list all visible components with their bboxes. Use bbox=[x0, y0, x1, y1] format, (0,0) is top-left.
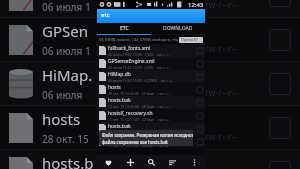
button[interactable]: HiMap.db bbox=[97, 70, 205, 83]
staticText: hosts.bak bbox=[108, 97, 131, 104]
button[interactable]: hostsX_recovery.sh bbox=[97, 109, 205, 122]
staticText: fallback_fonts.xml bbox=[108, 45, 151, 52]
button[interactable]: hosts.bak bbox=[97, 96, 205, 109]
staticText: hosts.b bbox=[42, 153, 94, 169]
staticText: hosts.orig bbox=[108, 136, 132, 143]
staticText: ETC bbox=[120, 25, 129, 32]
staticText: Права R/W bbox=[181, 37, 201, 43]
button[interactable]: More options bbox=[184, 155, 204, 169]
button[interactable]: Select bbox=[269, 161, 291, 169]
staticText: hosts bbox=[42, 109, 81, 129]
staticText: -rw-r--r-- bbox=[202, 130, 238, 142]
staticText: HiMap.db bbox=[108, 71, 131, 78]
staticText: 28 окт. 15 13:43:40 25 байт -rw-r--r-- bbox=[108, 91, 172, 96]
button[interactable]: GPSenseEngine.xml bbox=[97, 57, 205, 70]
button[interactable]: hosts.orig bbox=[97, 135, 205, 148]
staticText: 06 июля 15:07 10:00 6,27MB -rw-r--r-- bbox=[108, 78, 174, 83]
button[interactable]: Sort bbox=[162, 155, 182, 169]
button[interactable]: Select bbox=[269, 117, 291, 139]
staticText: 11 окт. 15 10:11:00 42 байт -rw-r--r-- bbox=[108, 143, 172, 148]
button[interactable]: Favorites bbox=[98, 155, 118, 169]
staticText: GPSen bbox=[42, 21, 88, 41]
staticText: 11 окт. 15 12:29:00 28 байт -rw-r--r-- bbox=[108, 104, 172, 109]
button[interactable]: HiMap. bbox=[0, 62, 300, 106]
staticText: -rw-r--r-- bbox=[202, 42, 238, 54]
staticText: GPSenseEngine.xml bbox=[108, 58, 155, 65]
staticText: файла сохранена как hosts.bak bbox=[102, 139, 168, 145]
staticText: 58,63MB занято, 144,47MB свободно, r/w bbox=[99, 37, 179, 42]
button[interactable]: hosts.b bbox=[0, 150, 300, 169]
staticText: 28 окт. 15 bbox=[42, 132, 89, 146]
button[interactable]: fallback_fonts.xml bbox=[97, 44, 205, 57]
staticText: 11 окт. 15 10:11:00 42 байт -rw-r--r-- bbox=[108, 117, 172, 122]
staticText: hosts bbox=[108, 84, 121, 91]
staticText: 06 июля 1 bbox=[42, 44, 91, 58]
button[interactable]: hosts bbox=[0, 106, 300, 150]
staticText: Файл сохранен. Резервная копия исходного bbox=[102, 132, 193, 138]
staticText: -rw-r--r-- bbox=[202, 86, 238, 98]
staticText: hostsX_recovery.sh bbox=[108, 110, 153, 117]
staticText: hosts.bak bbox=[108, 123, 131, 130]
button[interactable]: hosts.bak bbox=[97, 122, 205, 135]
button[interactable]: Select bbox=[269, 73, 291, 95]
staticText: 06 июля bbox=[42, 88, 83, 102]
staticText: DOWNLOAD bbox=[163, 25, 193, 32]
staticText: 06 июля 15:07 10:00 6,30K -rw-r--r-- bbox=[108, 65, 171, 70]
button[interactable]: GPSen bbox=[0, 18, 300, 62]
button[interactable]: Select bbox=[269, 29, 291, 51]
staticText: 11 окт. 15 10:11:00 42 байт -rw-r--r-- bbox=[108, 130, 172, 135]
button[interactable]: Права R/W bbox=[179, 37, 203, 43]
staticText: -rw-r--r-- bbox=[202, 0, 238, 10]
staticText: HiMap. bbox=[42, 65, 93, 85]
button[interactable]: fallback_f bbox=[0, 0, 300, 18]
button[interactable]: ETC bbox=[97, 23, 151, 34]
staticText: 06 июля 1 bbox=[42, 0, 91, 14]
button[interactable]: Add bbox=[120, 155, 140, 169]
button[interactable]: Search bbox=[141, 155, 161, 169]
staticText: 06 июля 15:07 10:00 7,82K -rw-r--r-- bbox=[108, 52, 171, 57]
staticText: 12:43 bbox=[188, 1, 204, 9]
button[interactable]: hosts bbox=[97, 83, 205, 96]
button[interactable]: etc bbox=[97, 9, 205, 23]
staticText: etc bbox=[101, 11, 110, 19]
button[interactable]: Select bbox=[269, 0, 291, 7]
button[interactable]: DOWNLOAD bbox=[151, 23, 205, 34]
